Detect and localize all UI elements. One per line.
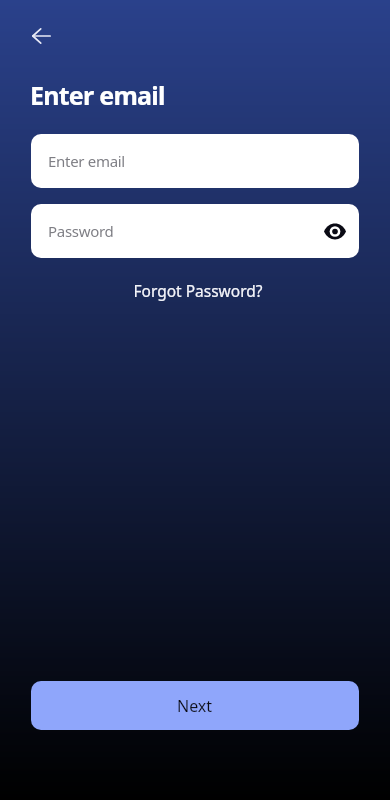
button[interactable]: Next (31, 681, 359, 730)
button[interactable]: Enter email (31, 134, 359, 188)
button[interactable]: Show password (318, 214, 352, 248)
button[interactable]: Back (19, 13, 64, 58)
staticText: Password (48, 221, 114, 241)
staticText: Enter email (30, 78, 165, 112)
button[interactable]: Forgot Password? (125, 276, 271, 305)
staticText: Enter email (48, 151, 125, 171)
button[interactable]: Password (31, 204, 359, 258)
staticText: Next (177, 695, 213, 717)
